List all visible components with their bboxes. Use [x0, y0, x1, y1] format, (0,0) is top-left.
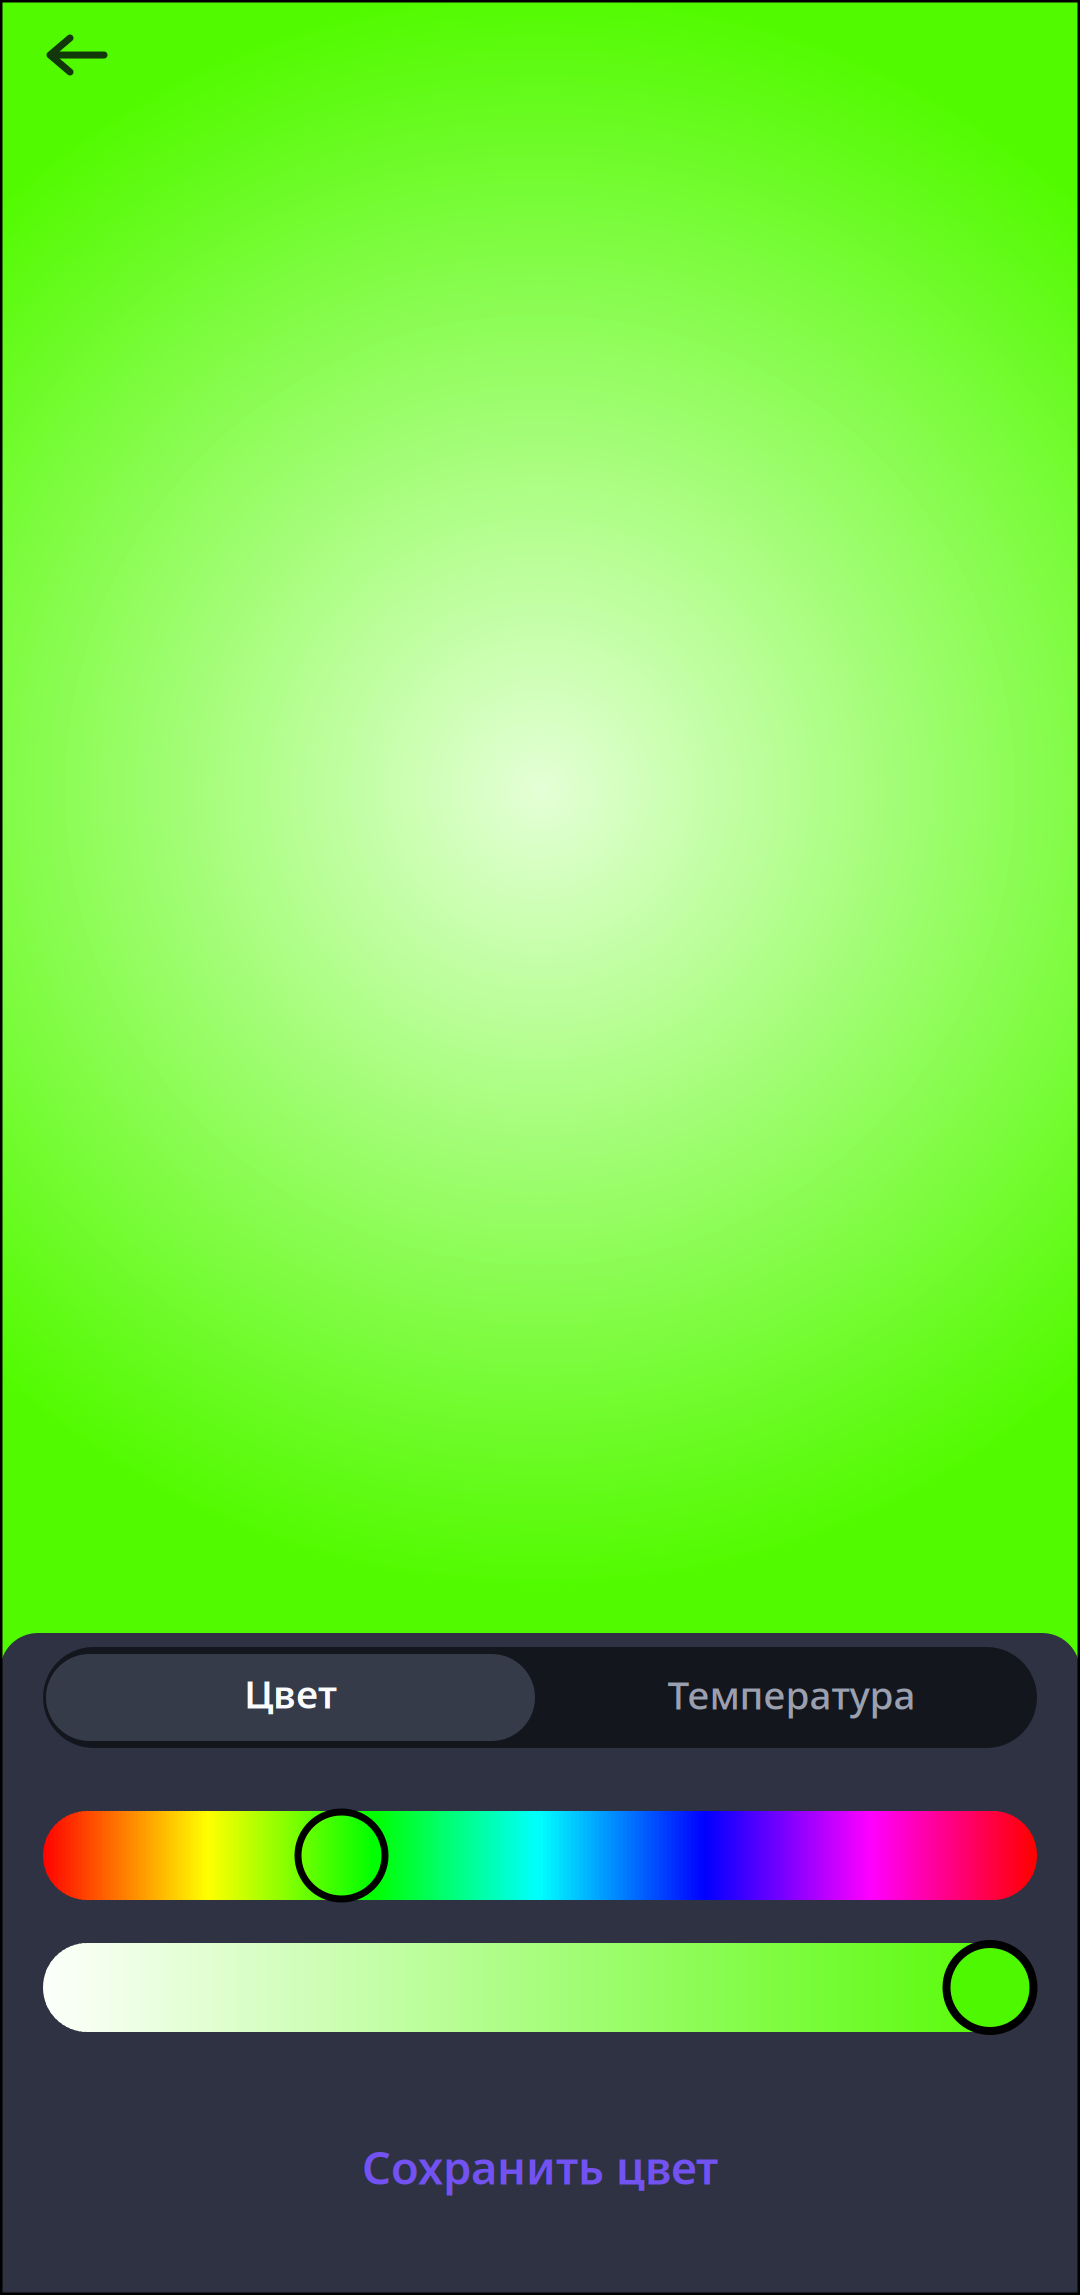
button[interactable]: Сохранить цвет: [0, 2127, 1080, 2207]
staticText: Температура: [667, 1669, 915, 1720]
button[interactable]: Hue: [43, 1811, 1037, 1900]
staticText: Цвет: [244, 1668, 337, 1719]
button[interactable]: Brightness: [43, 1943, 1037, 2032]
staticText: Сохранить цвет: [362, 2137, 718, 2197]
button[interactable]: Back: [0, 0, 140, 110]
button[interactable]: Температура: [538, 1647, 1037, 1748]
button[interactable]: Цвет: [43, 1647, 538, 1748]
